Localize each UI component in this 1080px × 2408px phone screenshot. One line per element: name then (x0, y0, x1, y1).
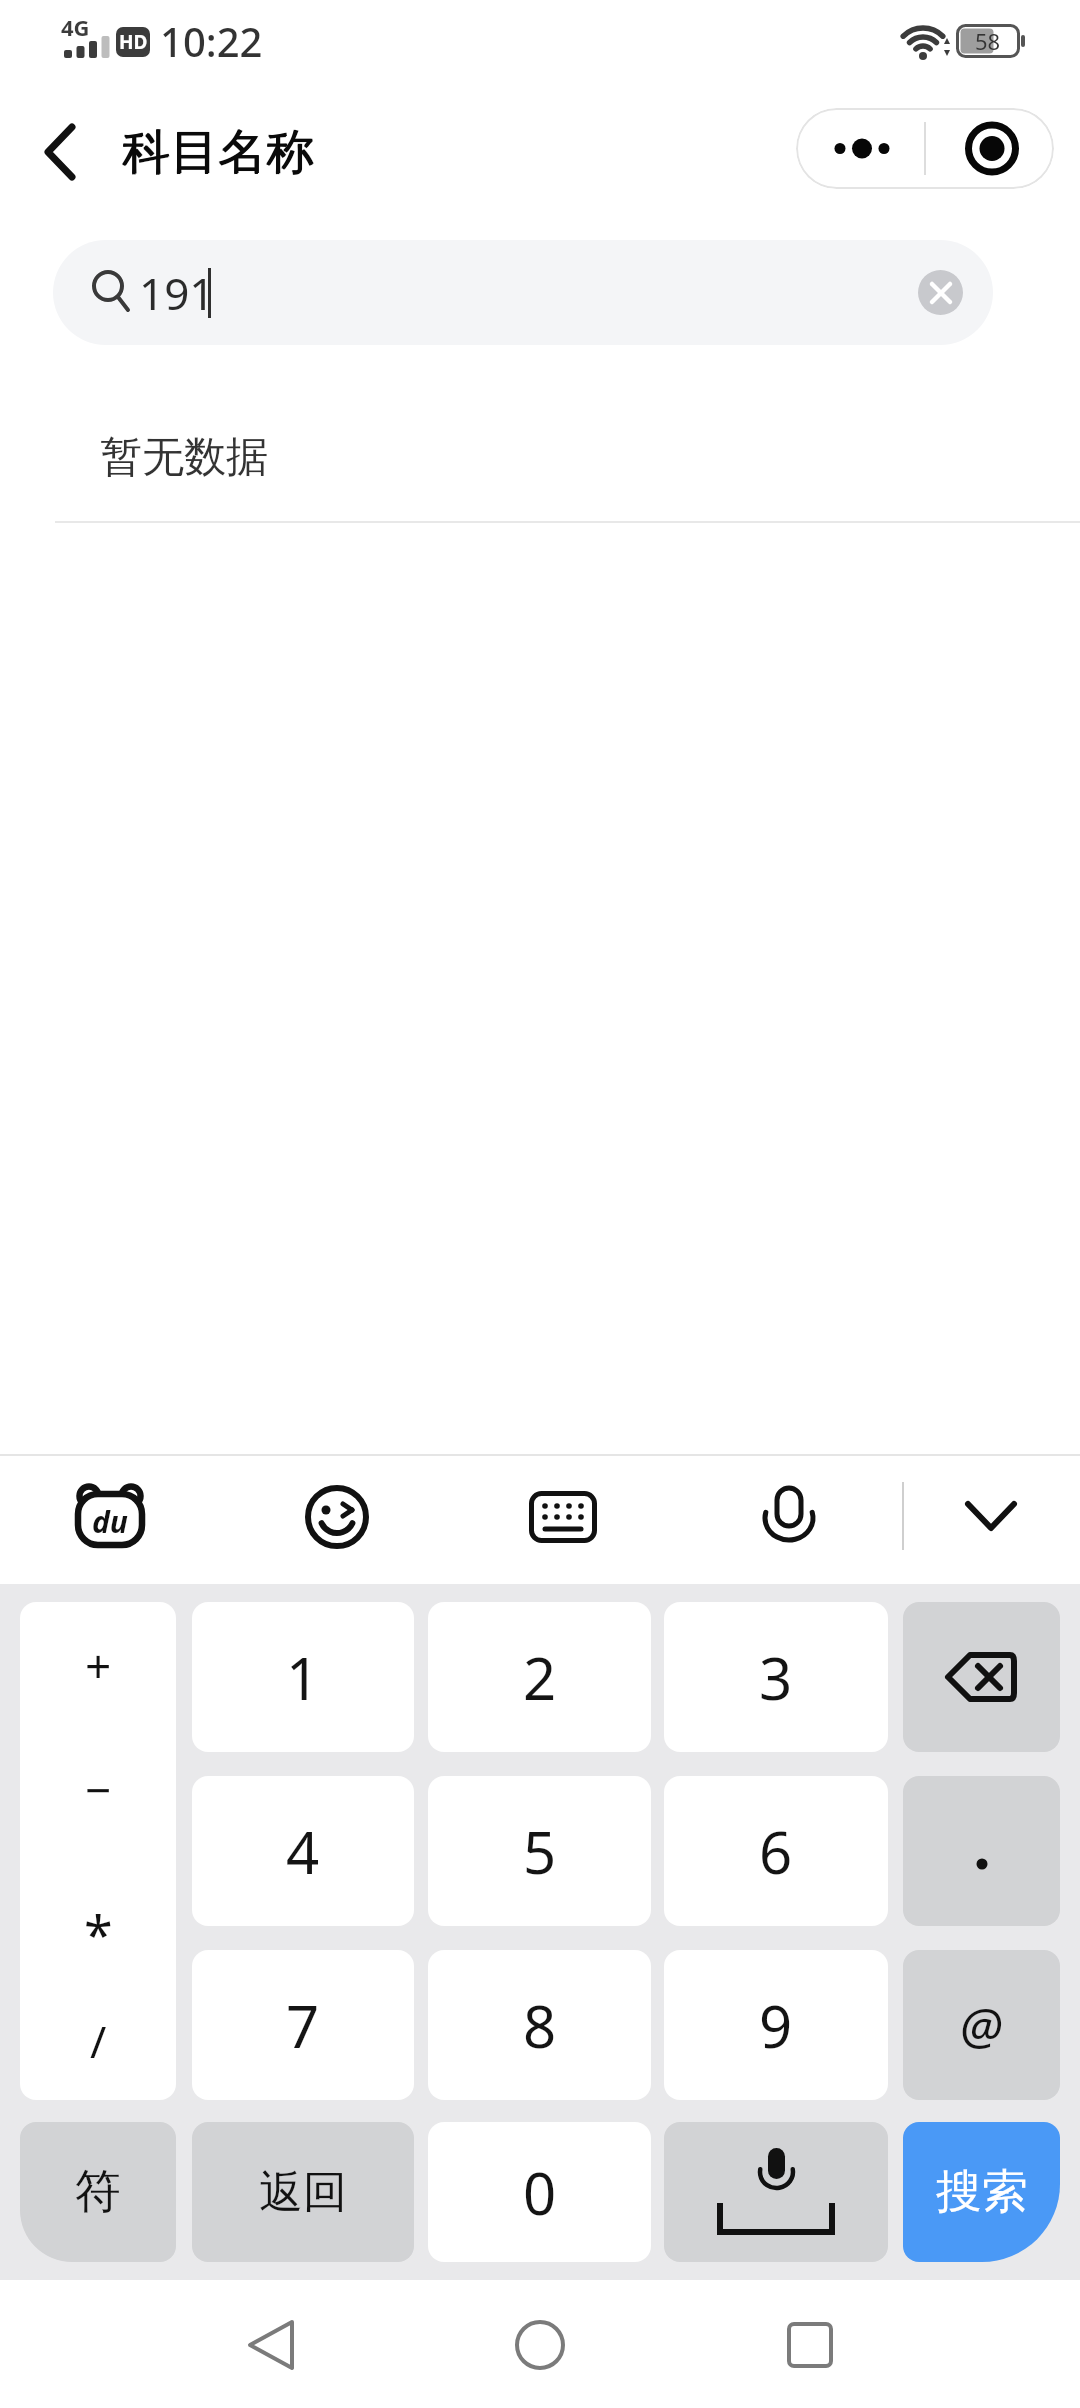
staticText: 4 (286, 1812, 320, 1891)
button[interactable]: 2 (428, 1602, 651, 1752)
staticText: 科目名称 (123, 122, 315, 180)
button[interactable] (750, 2290, 870, 2400)
staticText: * (84, 1898, 113, 1969)
staticText: 9 (759, 1986, 793, 2065)
staticText: @ (960, 1991, 1003, 2059)
button[interactable] (903, 1602, 1060, 1752)
button[interactable] (210, 2290, 330, 2400)
button[interactable]: 返回 (192, 2122, 414, 2262)
staticText: HD (119, 29, 148, 55)
staticText: 5 (523, 1812, 557, 1891)
button[interactable] (480, 2290, 600, 2400)
staticText: 58 (975, 26, 1001, 56)
staticText: 3 (759, 1638, 793, 1717)
staticText: 8 (523, 1986, 557, 2065)
button[interactable]: 8 (428, 1950, 651, 2100)
staticText: 科目名称 (122, 122, 314, 180)
staticText: + (85, 1634, 112, 1697)
button[interactable]: 3 (664, 1602, 888, 1752)
staticText: 10:22 (160, 14, 263, 68)
button[interactable] (918, 270, 963, 315)
staticText: 0 (523, 2153, 557, 2232)
staticText: 6 (759, 1812, 793, 1891)
button[interactable]: 9 (664, 1950, 888, 2100)
button[interactable]: 7 (192, 1950, 414, 2100)
staticText: − (85, 1758, 112, 1821)
button[interactable]: 搜索 (903, 2122, 1060, 2262)
staticText: 科目名称 (122, 123, 314, 181)
staticText: du (92, 1501, 128, 1542)
button[interactable]: + (20, 1602, 176, 2100)
staticText: 191 (139, 263, 215, 323)
staticText: 4G (61, 12, 90, 38)
button[interactable] (516, 1470, 610, 1564)
button[interactable]: 暂无数据 (55, 393, 1080, 521)
button[interactable] (24, 112, 96, 192)
button[interactable] (796, 108, 925, 189)
button[interactable]: 0 (428, 2122, 651, 2262)
button[interactable] (903, 1776, 1060, 1926)
button[interactable] (944, 1470, 1038, 1564)
button[interactable]: 6 (664, 1776, 888, 1926)
button[interactable] (290, 1470, 384, 1564)
staticText: 符 (75, 2163, 121, 2221)
staticText: / (90, 2011, 107, 2071)
staticText: 返回 (259, 2165, 347, 2220)
button[interactable]: 5 (428, 1776, 651, 1926)
staticText: 2 (523, 1638, 557, 1717)
button[interactable]: @ (903, 1950, 1060, 2100)
button[interactable]: du (60, 1470, 160, 1564)
button[interactable] (925, 108, 1054, 189)
staticText: 搜索 (936, 2163, 1028, 2221)
button[interactable]: 4 (192, 1776, 414, 1926)
button[interactable]: 符 (20, 2122, 176, 2262)
button[interactable] (664, 2122, 888, 2262)
button[interactable]: 1 (192, 1602, 414, 1752)
staticText: 7 (286, 1986, 320, 2065)
button[interactable]: 191 (53, 240, 993, 345)
staticText: 1 (286, 1638, 320, 1717)
staticText: 暂无数据 (100, 431, 268, 484)
button[interactable] (742, 1470, 836, 1564)
